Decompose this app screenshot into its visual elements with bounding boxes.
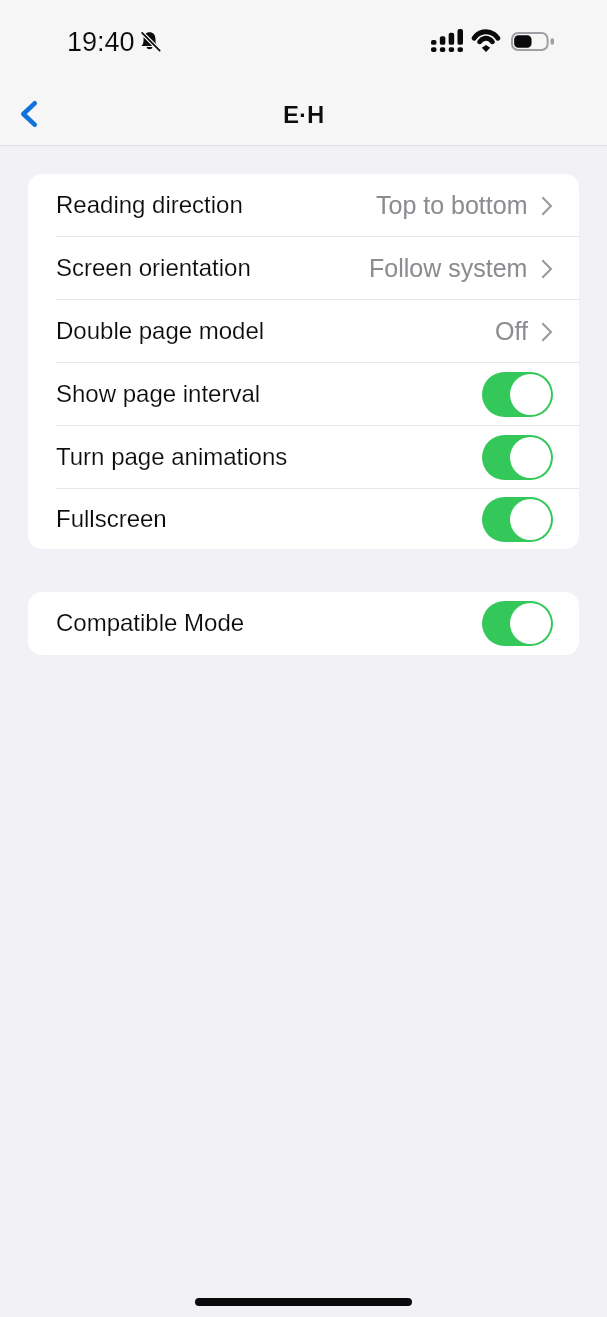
staticText: Turn page animations [56, 443, 288, 470]
staticText: Double page model [56, 317, 265, 344]
staticText: E·H [283, 101, 325, 128]
staticText: 19:40 [67, 27, 135, 57]
button[interactable]: Compatible Mode toggle, on [482, 601, 553, 646]
staticText: Screen orientation [56, 254, 251, 281]
staticText: Follow system [369, 254, 528, 282]
button[interactable]: Turn page animations toggle, on [482, 435, 553, 480]
button[interactable]: Double page model [28, 300, 579, 363]
staticText: Fullscreen [56, 505, 167, 532]
button[interactable]: Back [0, 84, 58, 144]
staticText: Top to bottom [376, 191, 528, 219]
staticText: Show page interval [56, 380, 261, 407]
button[interactable]: Fullscreen toggle, on [482, 497, 553, 542]
staticText: Compatible Mode [56, 609, 245, 636]
button[interactable]: Show page interval toggle, on [482, 372, 553, 417]
staticText: Reading direction [56, 191, 243, 218]
button[interactable]: Screen orientation [28, 237, 579, 300]
staticText: Off [495, 317, 528, 345]
button[interactable]: Reading direction [28, 174, 579, 237]
